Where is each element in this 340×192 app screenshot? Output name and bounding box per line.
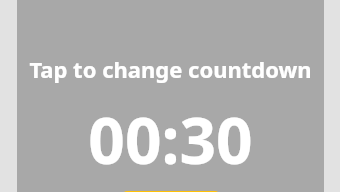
button[interactable]: Tap to change countdown bbox=[23, 52, 318, 86]
button[interactable]: START NOW bbox=[122, 191, 220, 192]
button[interactable]: 00:30 bbox=[84, 96, 257, 183]
staticText: 00:30 bbox=[88, 96, 253, 183]
staticText: Tap to change countdown bbox=[29, 54, 312, 84]
button[interactable]: Tap to change countdown bbox=[17, 0, 324, 192]
